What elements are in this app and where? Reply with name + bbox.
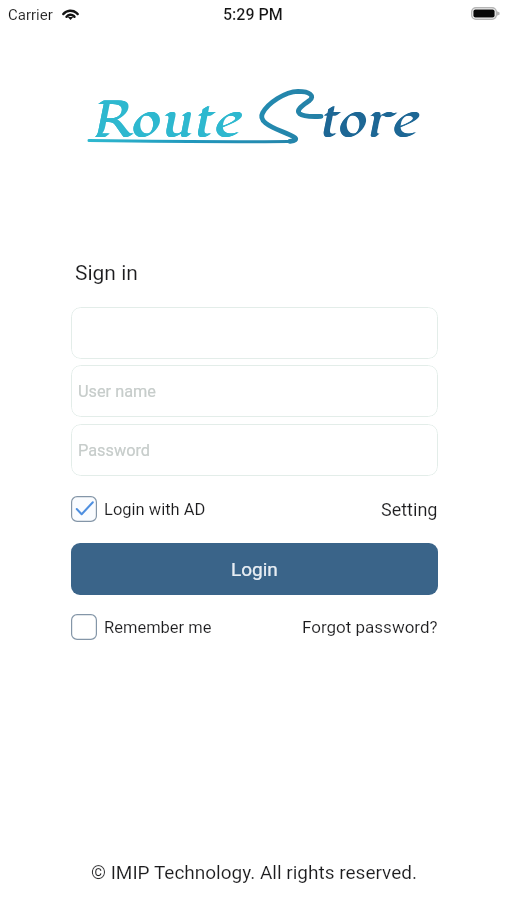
- staticText: tore: [317, 89, 416, 152]
- button[interactable]: Login with AD: [71, 496, 206, 522]
- button[interactable]: Login: [71, 543, 438, 595]
- staticText: © IMIP Technology. All rights reserved.: [91, 861, 417, 883]
- staticText: Login: [231, 558, 278, 580]
- staticText: Route: [90, 88, 239, 152]
- staticText: Login with AD: [104, 500, 206, 519]
- button[interactable]: User name: [71, 365, 438, 417]
- staticText: Route: [91, 88, 240, 152]
- staticText: Sign in: [75, 261, 138, 286]
- button[interactable]: Setting: [381, 499, 438, 520]
- button[interactable]: Server address: [71, 307, 438, 359]
- staticText: tore: [318, 89, 417, 152]
- staticText: Remember me: [104, 618, 212, 637]
- staticText: tore: [317, 89, 416, 152]
- staticText: 5:29 PM: [223, 5, 283, 24]
- button[interactable]: Forgot password?: [302, 617, 438, 637]
- staticText: Password: [78, 441, 150, 460]
- staticText: User name: [78, 382, 156, 401]
- button[interactable]: Remember me: [71, 614, 212, 640]
- staticText: Carrier: [8, 6, 53, 24]
- button[interactable]: Password: [71, 424, 438, 476]
- staticText: Route: [90, 88, 239, 152]
